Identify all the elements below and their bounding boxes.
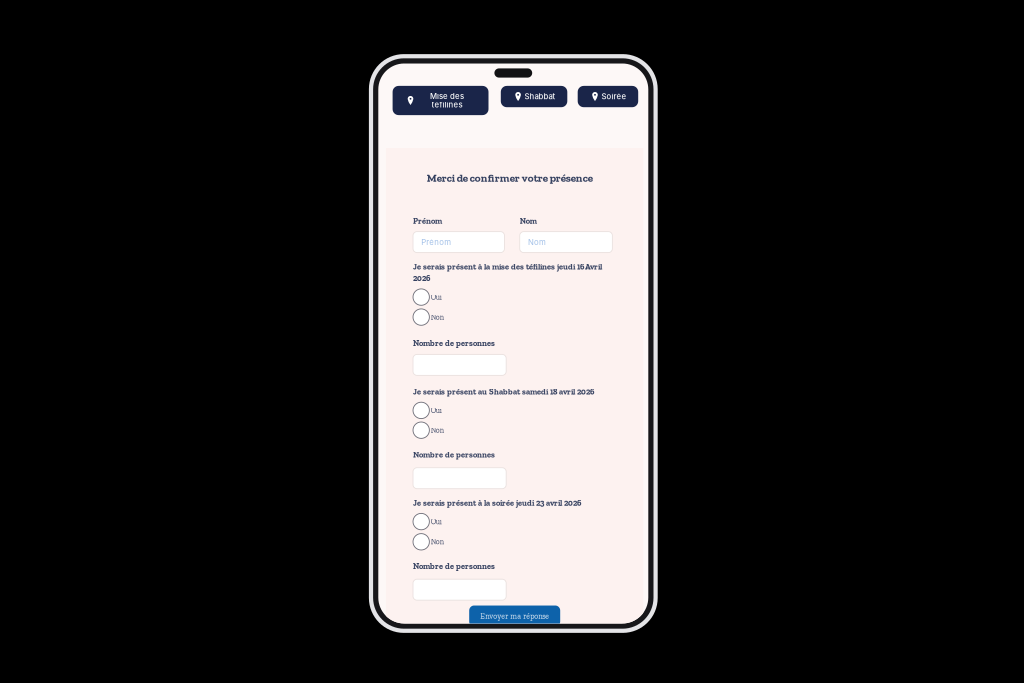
button[interactable]: Oui [413, 402, 473, 419]
button[interactable]: Oui [413, 513, 473, 530]
staticText: Shabbat [524, 92, 555, 101]
staticText: Nombre de personnes [413, 561, 495, 571]
button[interactable]: Mise des [393, 86, 488, 115]
staticText: Oui [431, 517, 442, 526]
button[interactable]: Envoyer ma réponse [469, 605, 560, 626]
button[interactable]: Shabbat [501, 86, 567, 107]
staticText: Je serais présent au Shabbat samedi 18 a… [413, 387, 594, 397]
button[interactable]: Non [413, 422, 473, 438]
staticText: Non [431, 313, 444, 322]
staticText: Oui [431, 293, 442, 302]
staticText: Nom [520, 216, 537, 226]
staticText: Je serais présent à la mise des téfiline… [413, 262, 602, 283]
staticText: téfilines [431, 100, 462, 109]
staticText: Nom [528, 237, 546, 247]
staticText: Mise des [430, 92, 464, 101]
button[interactable]: Non [413, 534, 473, 550]
staticText: Envoyer ma réponse [480, 611, 549, 621]
button[interactable]: Soirée [578, 86, 638, 107]
staticText: Non [431, 426, 444, 435]
staticText: Merci de confirmer votre présence [427, 171, 593, 184]
staticText: Nombre de personnes [413, 338, 495, 348]
button[interactable]: Oui [413, 289, 473, 305]
staticText: Prénom [421, 237, 451, 247]
staticText: Nombre de personnes [413, 450, 495, 460]
staticText: Prénom [413, 216, 442, 226]
staticText: Je serais présent à la soirée jeudi 23 a… [413, 498, 581, 508]
staticText: Oui [431, 406, 442, 415]
button[interactable]: Non [413, 309, 473, 325]
staticText: Soirée [601, 92, 626, 101]
staticText: Non [431, 537, 444, 546]
